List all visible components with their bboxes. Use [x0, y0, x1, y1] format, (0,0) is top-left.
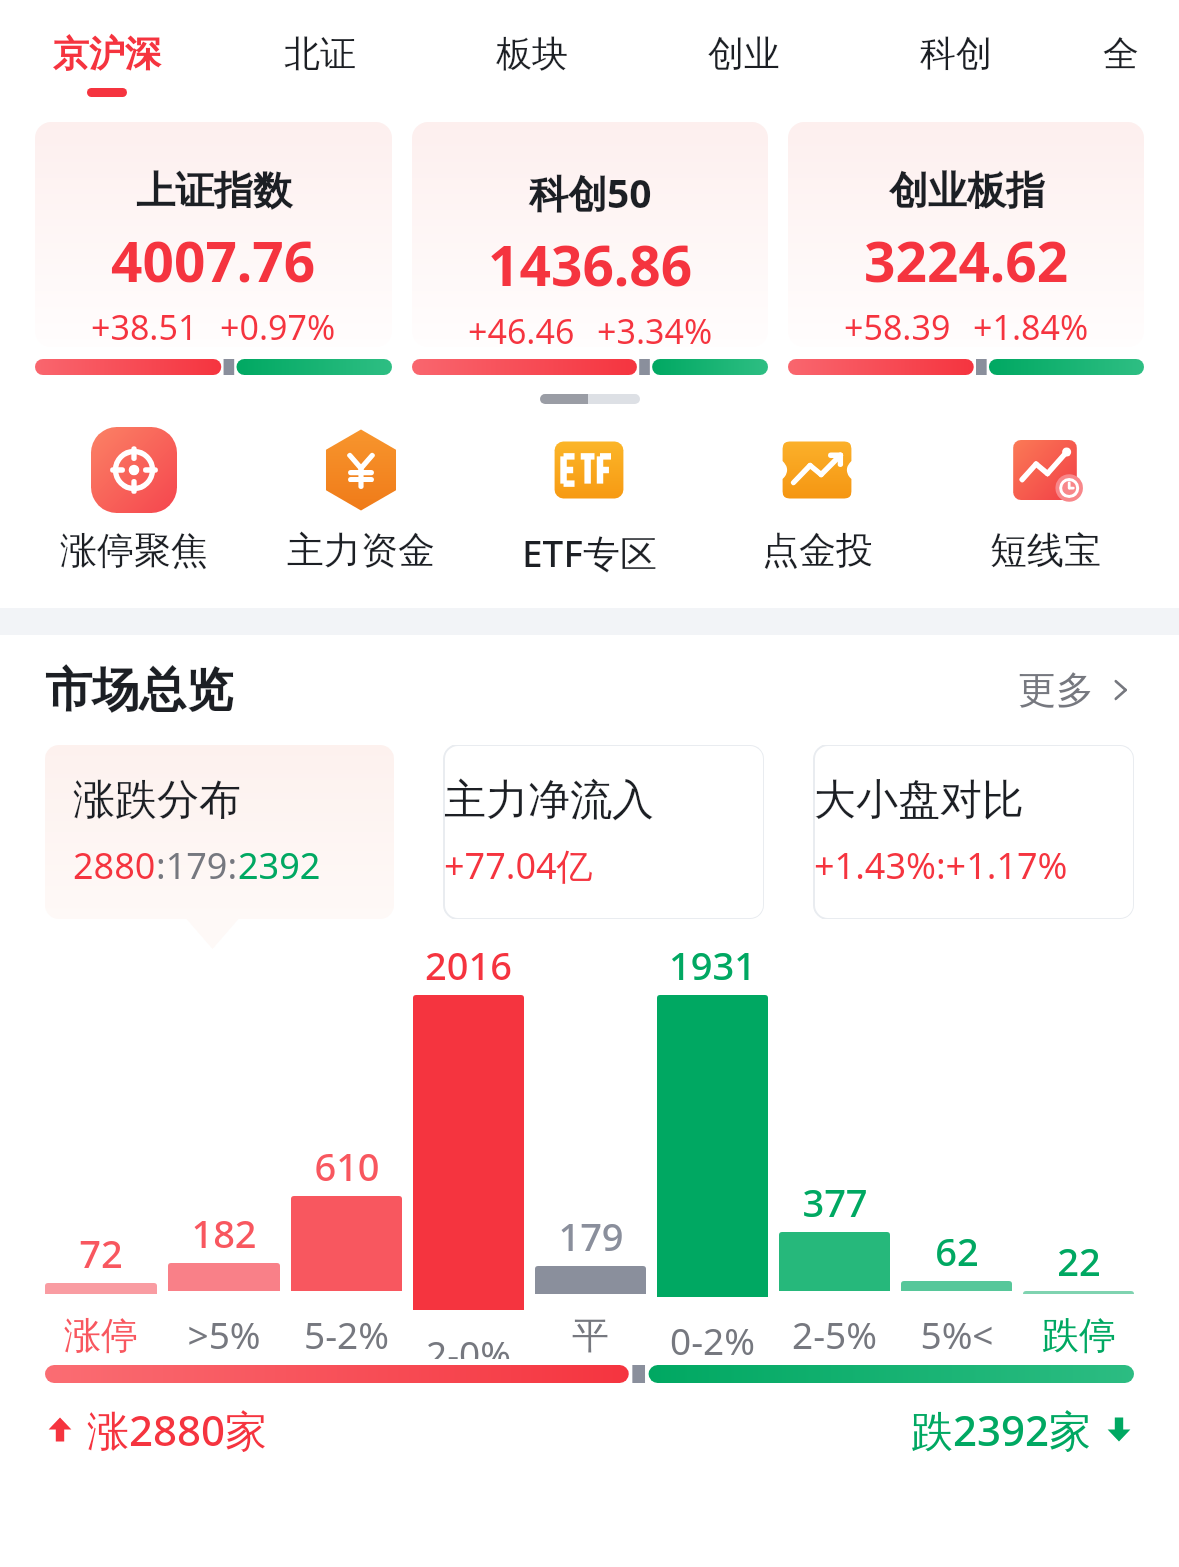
staticText: 1436.86 — [488, 227, 693, 302]
button[interactable]: 上证指数 — [35, 122, 392, 347]
button[interactable]: 创业板指 — [788, 122, 1144, 347]
button[interactable]: 科创 — [850, 0, 1062, 122]
button[interactable]: 点金投 — [703, 423, 931, 578]
button[interactable]: 北证 — [213, 0, 426, 122]
staticText: 主力净流入 — [444, 774, 654, 827]
staticText: 点金投 — [762, 527, 873, 574]
staticText: 上证指数 — [136, 166, 292, 215]
button[interactable]: 全 — [1062, 0, 1179, 122]
staticText: +1.43%:+1.17% — [814, 841, 1068, 890]
staticText: 市场总览 — [45, 661, 233, 720]
staticText: 62 — [935, 1225, 979, 1277]
button[interactable]: 涨跌分布 — [45, 745, 394, 919]
staticText: 1931 — [669, 939, 756, 991]
staticText: +46.46 — [468, 308, 575, 347]
staticText: 2-5% — [792, 1309, 877, 1359]
staticText: 涨2880家 — [87, 1401, 268, 1458]
staticText: +3.34% — [597, 308, 713, 347]
staticText: 涨停聚焦 — [60, 527, 208, 574]
staticText: 610 — [314, 1140, 380, 1192]
staticText: 创业 — [708, 31, 780, 76]
staticText: :179: — [156, 841, 238, 890]
staticText: 2016 — [425, 939, 512, 991]
button[interactable]: 涨停聚焦 — [20, 423, 247, 578]
staticText: 涨停 — [64, 1312, 138, 1359]
button[interactable]: 创业 — [638, 0, 850, 122]
button[interactable]: 京沪深 — [0, 0, 213, 122]
staticText: 3224.62 — [864, 223, 1069, 298]
staticText: 5-2% — [304, 1309, 389, 1359]
staticText: ETF专区 — [522, 527, 657, 578]
staticText: 4007.76 — [111, 223, 316, 298]
staticText: +38.51 — [91, 304, 198, 347]
button[interactable]: 短线宝 — [931, 423, 1159, 578]
button[interactable]: 大小盘对比 — [786, 745, 1134, 919]
staticText: 科创50 — [529, 166, 652, 219]
staticText: 跌2392家 — [911, 1401, 1092, 1458]
staticText: 主力资金 — [287, 527, 435, 574]
staticText: 2392 — [238, 841, 321, 890]
staticText: 跌停 — [1042, 1312, 1116, 1359]
staticText: 科创 — [920, 31, 992, 76]
staticText: 22 — [1057, 1235, 1101, 1287]
staticText: 平 — [572, 1312, 609, 1359]
button[interactable]: ETF专区 — [475, 423, 703, 582]
staticText: 2880 — [73, 841, 156, 890]
staticText: 182 — [191, 1207, 257, 1259]
staticText: +58.39 — [844, 304, 951, 347]
staticText: >5% — [187, 1309, 261, 1359]
staticText: 377 — [802, 1176, 868, 1228]
staticText: 创业板指 — [889, 166, 1045, 215]
button[interactable]: 主力净流入 — [416, 745, 764, 919]
staticText: 72 — [79, 1227, 123, 1279]
staticText: 179 — [558, 1210, 624, 1262]
staticText: 5%< — [920, 1309, 994, 1359]
staticText: 北证 — [284, 31, 356, 76]
staticText: 板块 — [496, 31, 568, 76]
staticText: 短线宝 — [990, 527, 1101, 574]
staticText: +0.97% — [220, 304, 336, 347]
staticText: 2-0% — [426, 1328, 511, 1359]
staticText: 全 — [1103, 31, 1139, 76]
button[interactable]: 更多 — [1018, 666, 1134, 714]
staticText: 0-2% — [670, 1315, 755, 1359]
staticText: 更多 — [1018, 666, 1094, 714]
button[interactable]: 科创50 — [412, 122, 768, 347]
staticText: +77.04亿 — [444, 841, 593, 890]
button[interactable]: 板块 — [426, 0, 638, 122]
staticText: 京沪深 — [53, 31, 161, 76]
staticText: +1.84% — [973, 304, 1089, 347]
staticText: 大小盘对比 — [814, 774, 1024, 827]
button[interactable]: 主力资金 — [247, 423, 475, 578]
staticText: 涨跌分布 — [73, 774, 241, 827]
